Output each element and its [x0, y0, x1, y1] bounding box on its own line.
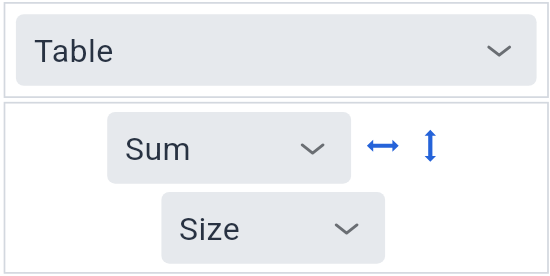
button[interactable]: Size — [161, 192, 385, 264]
button[interactable]: Table — [16, 14, 537, 86]
staticText: Table — [34, 32, 114, 70]
button[interactable]: Sum — [107, 112, 351, 184]
staticText: Size — [179, 210, 241, 248]
staticText: Sum — [125, 130, 191, 168]
button[interactable]: Adjust height — [410, 126, 450, 166]
button[interactable]: Adjust width — [361, 126, 405, 166]
